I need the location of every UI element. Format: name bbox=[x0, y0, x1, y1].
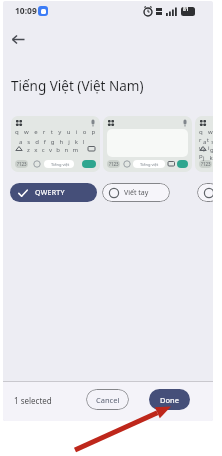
staticText: Tiếng việt bbox=[140, 162, 159, 167]
staticText: 1 selected bbox=[14, 395, 52, 406]
staticText: Viết tay bbox=[124, 188, 149, 198]
staticText: a s d f g h j k l bbox=[19, 138, 87, 146]
button[interactable]: Viết tay bbox=[102, 183, 170, 202]
staticText: q w e r t y u i o p bbox=[199, 128, 213, 160]
button[interactable]: q w e r t y u i o p bbox=[11, 116, 100, 172]
staticText: Cancel bbox=[96, 395, 120, 405]
staticText: 10:09 bbox=[15, 5, 37, 17]
staticText: Tiếng Việt (Việt Nam) bbox=[11, 77, 144, 95]
staticText: Tiếng việt bbox=[51, 162, 70, 167]
staticText: 81 bbox=[183, 6, 189, 13]
button[interactable]: QWERTY bbox=[10, 183, 97, 202]
staticText: ?123 bbox=[109, 161, 119, 167]
staticText: ?123 bbox=[201, 161, 211, 167]
button[interactable]: ?123 bbox=[103, 116, 192, 172]
staticText: QWERTY bbox=[35, 188, 65, 198]
staticText: Done bbox=[160, 395, 179, 405]
button[interactable] bbox=[12, 35, 25, 44]
staticText: q w e r t y u i o p bbox=[15, 128, 98, 136]
staticText: ?123 bbox=[17, 161, 27, 167]
button[interactable]: q w e r t y u i o p bbox=[195, 116, 213, 172]
staticText: a s d f g h j k l bbox=[203, 138, 213, 162]
button[interactable] bbox=[197, 183, 213, 202]
button[interactable]: Done bbox=[149, 389, 190, 410]
staticText: z x c v b n m bbox=[27, 146, 80, 154]
button[interactable]: Cancel bbox=[86, 389, 129, 410]
